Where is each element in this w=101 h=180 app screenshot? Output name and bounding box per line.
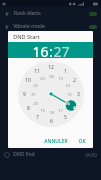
staticText: 2 bbox=[73, 77, 76, 84]
staticText: 20 bbox=[33, 101, 38, 106]
staticText: Flash Alerts bbox=[13, 10, 41, 17]
staticText: DND End bbox=[13, 151, 35, 158]
staticText: 00 bbox=[49, 74, 54, 79]
button[interactable]: OK bbox=[75, 136, 89, 147]
staticText: 4 bbox=[73, 105, 76, 112]
staticText: 04:00 bbox=[85, 152, 97, 158]
button[interactable]: Vibrate mode bbox=[0, 20, 101, 33]
staticText: 7 bbox=[36, 114, 39, 121]
staticText: 22 bbox=[33, 83, 38, 88]
staticText: 21 bbox=[31, 92, 36, 97]
staticText: : bbox=[49, 42, 53, 58]
staticText: 16 bbox=[65, 101, 70, 106]
staticText: 1 bbox=[64, 68, 67, 75]
button[interactable]: Toggle Vibrate mode bbox=[89, 25, 97, 29]
staticText: 9 bbox=[23, 91, 26, 98]
button[interactable]: Toggle Flash Alerts bbox=[89, 12, 97, 16]
button[interactable]: 27 bbox=[53, 42, 70, 58]
staticText: 3 bbox=[77, 91, 80, 98]
staticText: 14 bbox=[65, 83, 70, 88]
staticText: 10 bbox=[25, 77, 31, 84]
staticText: 18 bbox=[49, 110, 54, 115]
staticText: ANNULER bbox=[44, 138, 68, 145]
staticText: 5 bbox=[64, 114, 67, 121]
staticText: 15 bbox=[67, 92, 72, 97]
staticText: 19 bbox=[40, 108, 45, 113]
staticText: 27 bbox=[53, 42, 70, 58]
staticText: DND Start bbox=[13, 33, 40, 40]
staticText: Vibrate mode bbox=[13, 23, 45, 30]
button[interactable]: 16 bbox=[32, 42, 49, 58]
staticText: 11 bbox=[34, 68, 40, 75]
staticText: 6 bbox=[50, 118, 53, 125]
staticText: 8 bbox=[27, 105, 30, 112]
button[interactable]: 12 bbox=[18, 61, 84, 127]
staticText: 12 bbox=[48, 64, 54, 71]
staticText: OK bbox=[78, 138, 86, 145]
staticText: 23 bbox=[40, 76, 45, 81]
staticText: 16 bbox=[32, 42, 49, 58]
staticText: 13 bbox=[58, 76, 63, 81]
staticText: 17 bbox=[58, 108, 63, 113]
button[interactable]: ANNULER bbox=[41, 136, 71, 147]
button[interactable]: DND End bbox=[0, 148, 101, 161]
button[interactable]: Flash Alerts bbox=[0, 7, 101, 20]
